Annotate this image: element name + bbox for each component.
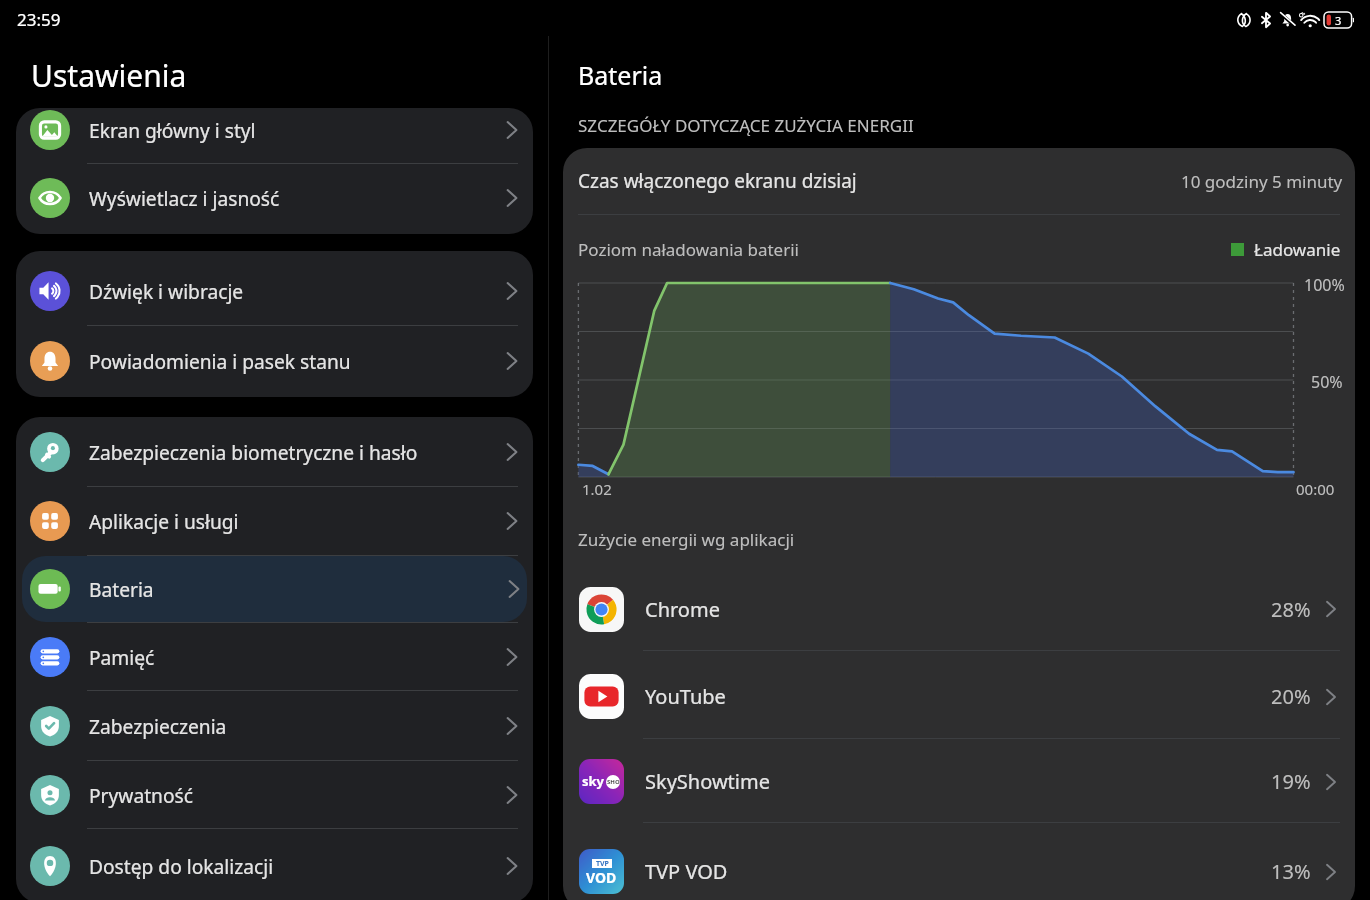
staticText: 23:59 [17,8,61,31]
button[interactable]: Prywatność [16,761,533,828]
staticText: 00:00 [1296,479,1335,499]
staticText: 19% [1271,768,1311,795]
staticText: Ładowanie [1254,238,1341,261]
staticText: Prywatność [89,782,193,808]
other: Battery 3 percent [1324,12,1354,28]
staticText: 13% [1271,858,1311,885]
button[interactable]: Dostęp do lokalizacji [16,829,533,900]
staticText: Ekran główny i styl [89,117,256,143]
other: Wi-Fi [1299,12,1319,28]
staticText: TVP VOD [645,858,728,885]
other: Notifications off [1280,12,1295,28]
button[interactable]: sky [563,739,1355,822]
staticText: Pamięć [89,644,155,670]
staticText: VOD [586,868,617,887]
other: Vibrate [1236,12,1252,28]
staticText: 1.02 [582,479,612,499]
button[interactable]: Zabezpieczenia [16,691,533,760]
staticText: YouTube [645,683,726,710]
staticText: Aplikacje i usługi [89,508,239,534]
staticText: Chrome [645,596,720,623]
staticText: Ustawienia [31,55,187,96]
button[interactable]: Bateria [22,556,527,622]
button[interactable]: Wyświetlacz i jasność [16,164,533,234]
staticText: 50% [1311,371,1343,393]
button[interactable]: Pamięć [16,623,533,690]
staticText: Czas włączonego ekranu dzisiaj [578,168,857,194]
staticText: Wyświetlacz i jasność [89,185,280,211]
staticText: Zabezpieczenia [89,713,227,739]
staticText: TVP [596,859,609,868]
staticText: SHO [607,778,620,786]
staticText: 28% [1271,596,1311,623]
staticText: 20% [1271,683,1311,710]
staticText: Zużycie energii wg aplikacji [578,528,795,551]
staticText: Powiadomienia i pasek stanu [89,348,351,374]
button[interactable]: TVP [563,823,1355,900]
staticText: Bateria [578,58,663,92]
staticText: 100% [1304,274,1345,296]
staticText: Dostęp do lokalizacji [89,853,274,879]
button[interactable]: Powiadomienia i pasek stanu [16,326,533,397]
staticText: Zabezpieczenia biometryczne i hasło [89,439,418,465]
button[interactable]: Dźwięk i wibracje [16,251,533,325]
staticText: SZCZEGÓŁY DOTYCZĄCE ZUŻYCIA ENERGII [578,114,914,137]
other: Bluetooth [1260,12,1272,28]
staticText: Dźwięk i wibracje [89,278,244,304]
button[interactable]: Aplikacje i usługi [16,487,533,555]
staticText: 3 [1335,13,1342,28]
staticText: Bateria [89,576,154,602]
button[interactable]: YouTube [563,651,1355,738]
button[interactable]: Zabezpieczenia biometryczne i hasło [16,417,533,486]
button[interactable]: Czas włączonego ekranu dzisiaj [563,148,1355,214]
staticText: Poziom naładowania baterii [578,238,799,261]
staticText: SkyShowtime [645,768,770,795]
staticText: 10 godziny 5 minuty [1181,170,1343,193]
staticText: sky [582,772,605,790]
button[interactable]: Chrome [563,564,1355,650]
button[interactable]: Ekran główny i styl [16,108,533,163]
